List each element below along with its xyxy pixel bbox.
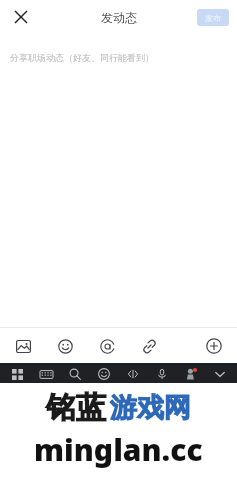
staticText: * [163,419,166,426]
button[interactable]: Mention [94,333,120,359]
button[interactable]: @ [36,418,57,441]
button[interactable]: Emoji [93,363,115,385]
button[interactable]: 4 [71,391,92,414]
staticText: 铭蓝 [46,389,106,427]
staticText: 7 [151,392,154,399]
button[interactable]: More [201,333,227,359]
staticText: e [55,399,62,414]
staticText: # [68,419,72,426]
button[interactable]: / [106,445,128,468]
button[interactable]: Translate [122,363,144,385]
button[interactable]: Link [136,333,162,359]
button[interactable]: ' [178,445,200,468]
staticText: i [175,399,178,414]
staticText: minglan.cc [34,429,203,470]
button[interactable]: 2 [25,391,46,414]
staticText: r [79,399,84,414]
button[interactable]: 6 [117,391,139,414]
button[interactable]: Emoji [52,333,78,359]
staticText: ' [188,446,190,453]
button[interactable]: 5 [94,391,115,414]
button[interactable]: ! [82,418,103,441]
staticText: - [46,446,48,453]
staticText: 发布 [205,13,221,23]
button[interactable]: * [153,418,175,441]
button[interactable]: 发布 [197,9,229,26]
button[interactable]: ; [154,445,176,468]
staticText: v [114,453,120,468]
staticText: % [114,419,119,426]
staticText: b [138,453,145,468]
button[interactable]: ( [177,418,199,441]
button[interactable]: Stickers [180,363,202,385]
button[interactable]: # [59,418,80,441]
button[interactable]: Voice input [151,363,173,385]
button[interactable]: : [130,445,152,468]
staticText: ! [92,419,94,426]
button[interactable]: Add image [10,333,36,359]
button[interactable]: 7 [141,391,163,414]
staticText: d [66,426,73,441]
staticText: n [162,453,169,468]
button[interactable]: Apps [6,363,28,385]
button[interactable]: Search [64,363,86,385]
staticText: 游戏网 [110,391,191,425]
button[interactable]: % [105,418,127,441]
button[interactable]: 8 [165,391,187,414]
button[interactable]: Collapse keyboard [209,363,231,385]
button[interactable]: 分享职场动态（好友、同行能看到） [0,34,237,327]
staticText: 发动态 [101,10,137,25]
button[interactable]: 3 [48,391,69,414]
staticText: 5 [103,392,106,399]
staticText: 分享职场动态（好友、同行能看到） [10,52,154,63]
staticText: 4 [80,392,83,399]
staticText: 6 [127,392,130,399]
staticText: 8 [175,392,178,399]
staticText: c [90,453,96,468]
button[interactable]: - [36,445,57,468]
staticText: m [184,453,195,468]
button[interactable]: Keyboard [35,363,57,385]
staticText: u [149,399,156,414]
button[interactable]: 9 [189,391,211,414]
button[interactable]: = [82,445,104,468]
staticText: g [113,426,120,441]
button[interactable]: + [59,445,80,468]
staticText: x [67,453,73,468]
button[interactable]: & [129,418,151,441]
button[interactable]: Close [8,4,34,30]
